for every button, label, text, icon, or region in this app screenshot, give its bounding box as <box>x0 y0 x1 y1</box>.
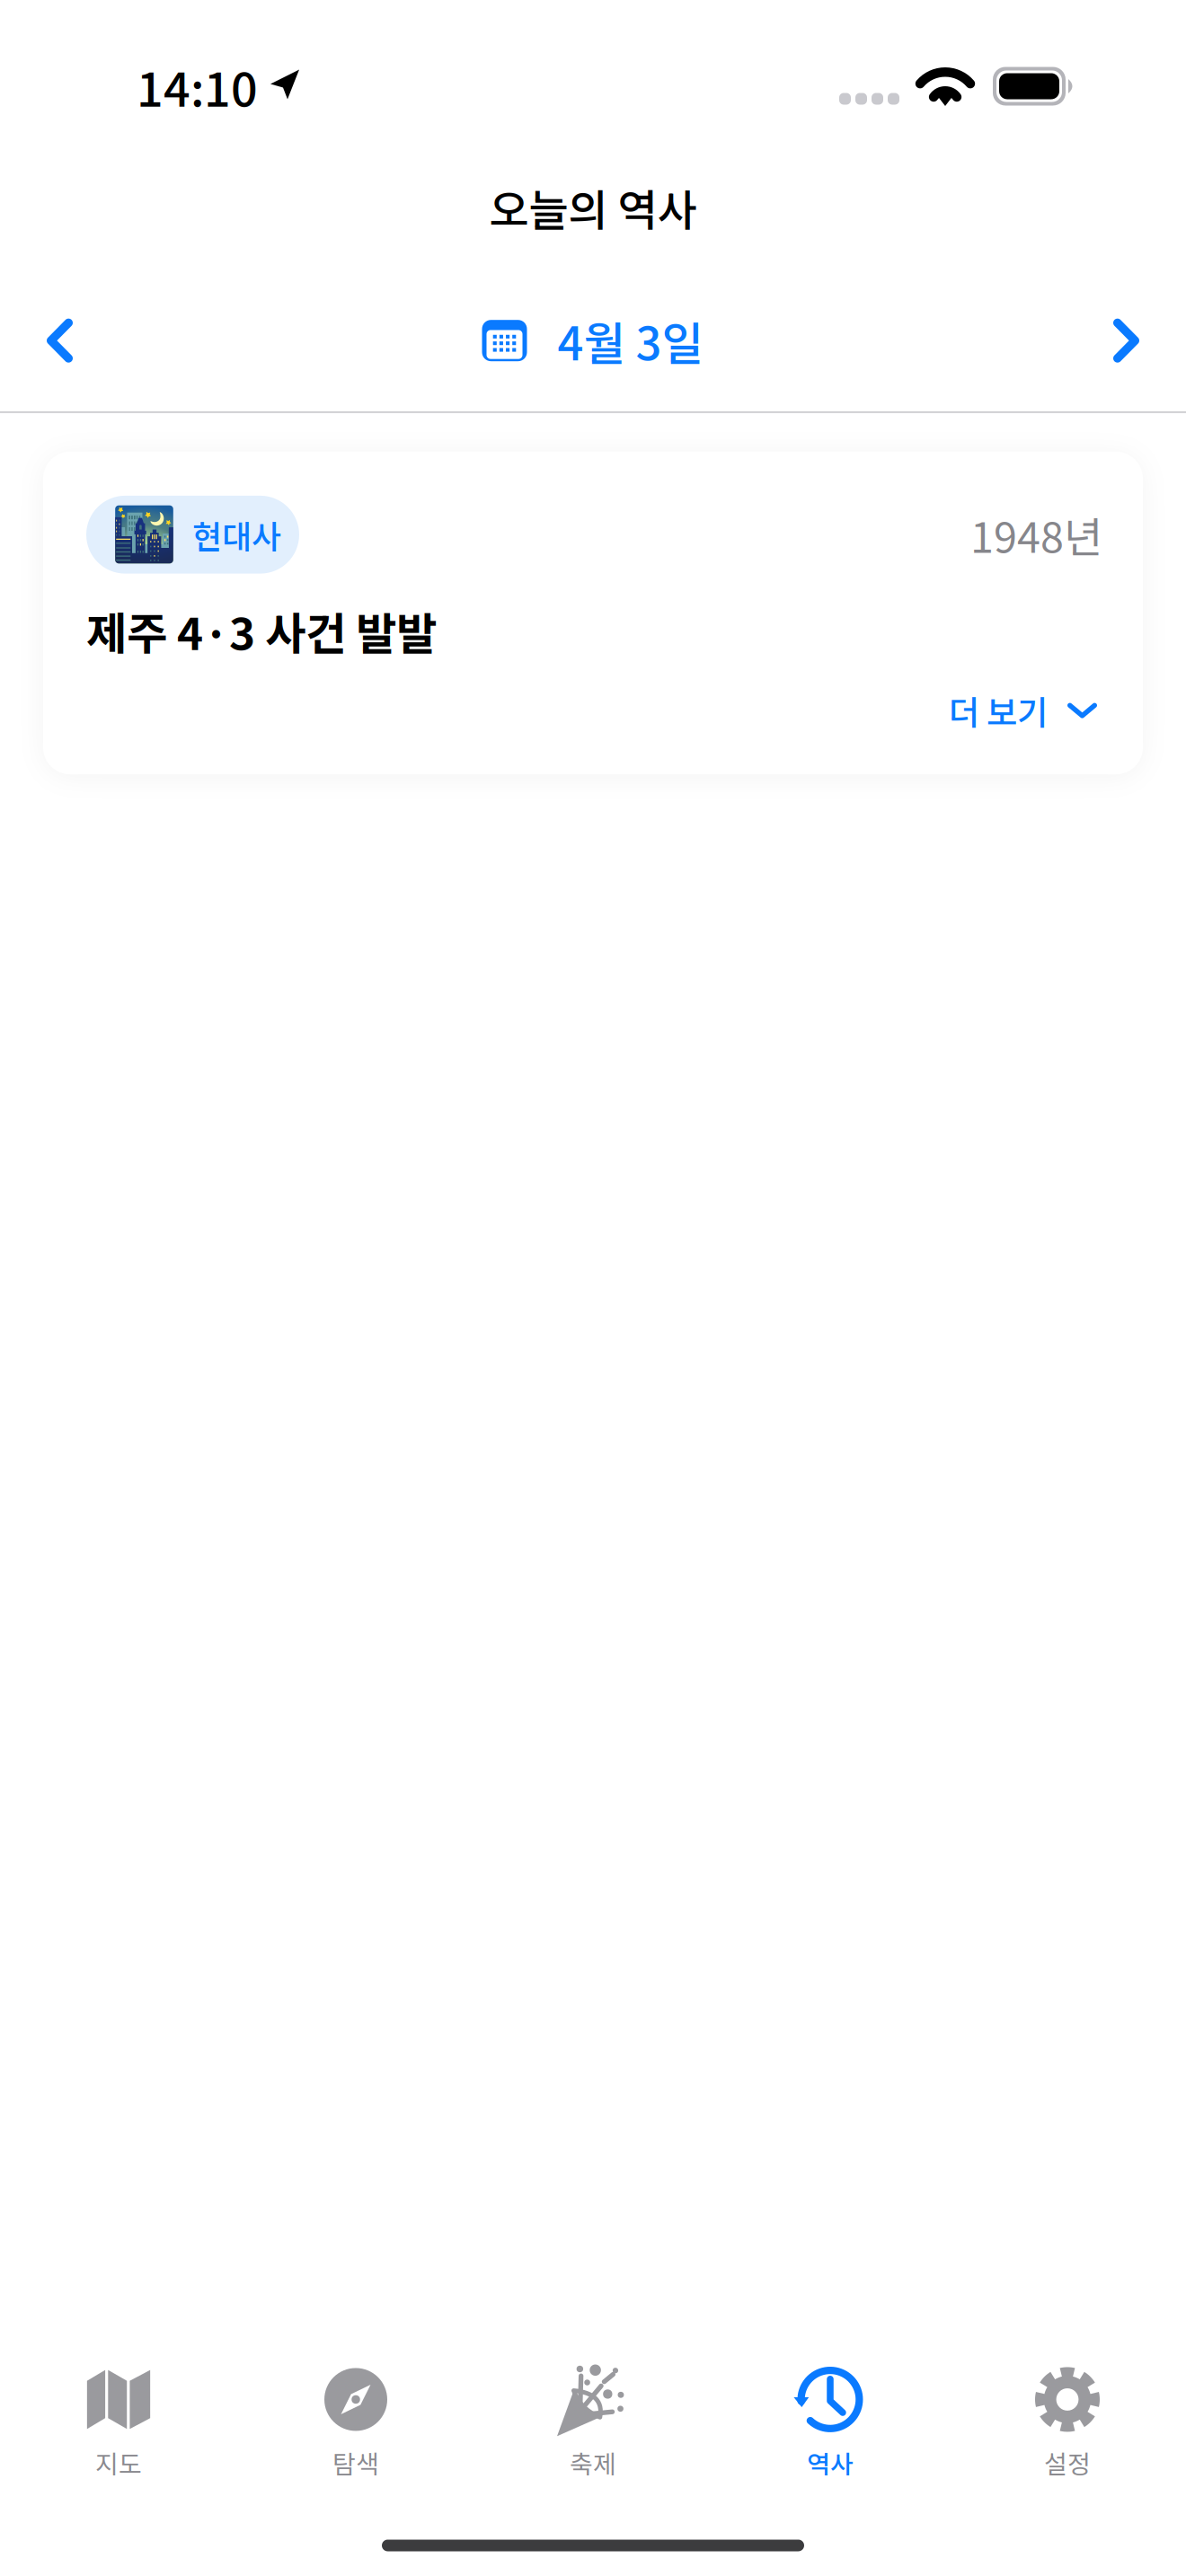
button[interactable]: 설정 <box>949 2368 1186 2515</box>
button[interactable]: 지도 <box>0 2368 237 2515</box>
staticText: 설정 <box>1044 2444 1091 2481</box>
button[interactable]: 🌃 <box>43 452 1143 774</box>
staticText: 제주 4·3 사건 발발 <box>86 599 437 663</box>
button[interactable]: 4월 3일 <box>482 286 704 395</box>
button[interactable]: 이전 날짜 <box>0 295 109 386</box>
staticText: 더 보기 <box>949 686 1048 735</box>
button[interactable]: 역사 <box>712 2368 949 2515</box>
button[interactable]: 탐색 <box>237 2368 474 2515</box>
staticText: 역사 <box>807 2444 854 2481</box>
staticText: 1948년 <box>970 504 1102 565</box>
staticText: 축제 <box>570 2444 616 2481</box>
button[interactable]: 축제 <box>474 2368 712 2515</box>
button[interactable]: 다음 날짜 <box>1077 295 1186 386</box>
staticText: 4월 3일 <box>558 308 704 374</box>
staticText: 14:10 <box>137 52 258 120</box>
staticText: 탐색 <box>332 2444 379 2481</box>
staticText: 지도 <box>95 2444 142 2481</box>
staticText: 현대사 <box>192 511 281 558</box>
staticText: 🌃 <box>111 504 177 566</box>
staticText: 오늘의 역사 <box>489 176 697 238</box>
